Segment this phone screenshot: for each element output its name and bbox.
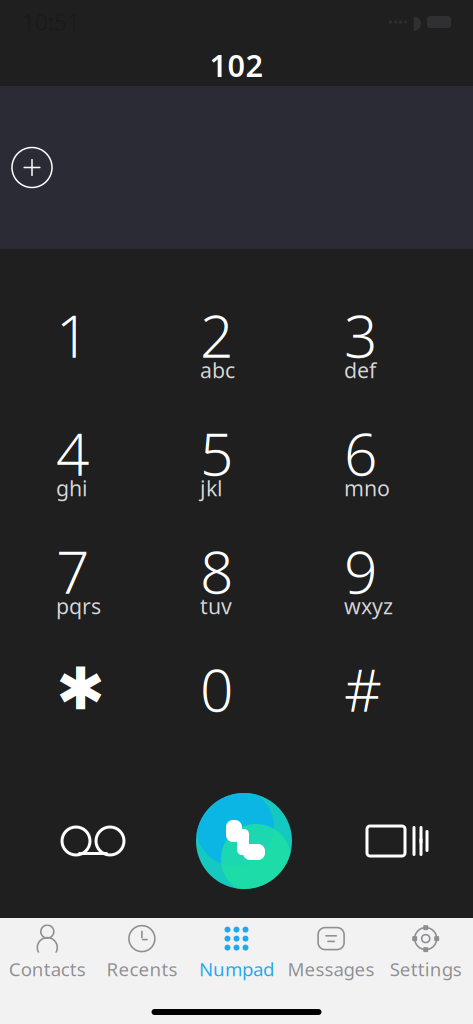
button[interactable]: 1 [56,309,200,409]
button[interactable]: 6 [344,427,473,527]
staticText: 4 [56,414,89,492]
staticText: Messages [288,957,375,981]
staticText: pqrs [56,592,101,620]
staticText: 6 [344,414,377,492]
button[interactable]: 2 [200,309,344,409]
staticText: jkl [200,474,223,502]
staticText: Recents [106,957,177,981]
button[interactable]: 5 [200,427,344,527]
button[interactable]: Voicemail [53,811,133,871]
button[interactable]: Call [196,793,292,889]
button[interactable]: 4 [56,427,200,527]
button[interactable]: Add contact [8,143,56,191]
button[interactable]: Recents [95,922,189,984]
staticText: 3 [344,296,377,374]
button[interactable]: 0 [200,663,344,763]
staticText: 5 [200,414,233,492]
staticText: 9 [344,532,377,610]
staticText: ✱ [56,656,105,722]
button[interactable]: ✱ [56,663,200,763]
button[interactable]: 9 [344,545,473,645]
staticText: 102 [209,45,263,85]
button[interactable]: 3 [344,309,473,409]
staticText: mno [344,474,390,502]
button[interactable]: Contacts [0,922,95,984]
button[interactable]: Messages [284,922,378,984]
button[interactable]: # [344,663,473,763]
staticText: Numpad [199,957,274,981]
staticText: Settings [390,957,462,981]
staticText: 0 [200,650,233,728]
staticText: 1 [56,296,89,374]
staticText: abc [200,356,235,384]
staticText: # [344,650,382,728]
staticText: ghi [56,474,88,502]
staticText: 8 [200,532,233,610]
staticText: 7 [56,532,89,610]
staticText: Contacts [9,957,86,981]
button[interactable]: Numpad [189,922,284,984]
staticText: 2 [200,296,233,374]
staticText: ◗ [412,11,422,33]
button[interactable]: 8 [200,545,344,645]
staticText: def [344,356,376,384]
button[interactable]: Settings [378,922,473,984]
button[interactable]: 7 [56,545,200,645]
staticText: wxyz [344,592,393,620]
staticText: tuv [200,592,232,620]
button[interactable]: FaceTime video call [355,811,435,871]
